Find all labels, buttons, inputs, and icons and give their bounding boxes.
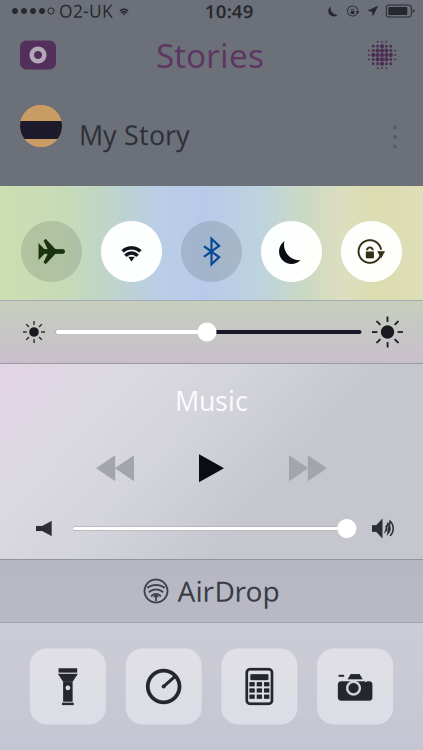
button[interactable]: Wi-Fi xyxy=(91,186,171,300)
button[interactable]: Next Track xyxy=(269,442,347,494)
button[interactable]: Brightness xyxy=(73,518,351,538)
button[interactable]: Timer xyxy=(116,630,212,742)
staticText: O2-UK xyxy=(59,0,113,22)
button[interactable]: Discover People xyxy=(358,33,406,77)
staticText: My Story xyxy=(79,117,190,153)
button[interactable]: Play xyxy=(172,442,250,494)
button[interactable]: Camera xyxy=(307,630,403,742)
button[interactable]: My Story xyxy=(0,88,423,164)
button[interactable]: Bluetooth xyxy=(171,186,251,300)
button[interactable]: Flashlight xyxy=(20,630,116,742)
staticText: Stories xyxy=(156,33,264,77)
button[interactable]: Airplane Mode xyxy=(11,186,91,300)
staticText: AirDrop xyxy=(177,572,279,610)
staticText: Music xyxy=(175,383,248,418)
button[interactable]: Do Not Disturb xyxy=(251,186,331,300)
button[interactable]: Calculator xyxy=(211,630,307,742)
staticText: 10:49 xyxy=(205,0,254,23)
button[interactable]: Rotation Lock xyxy=(331,186,411,300)
button[interactable]: Brightness xyxy=(55,322,361,342)
button[interactable]: AirDrop xyxy=(0,560,423,622)
button[interactable]: Previous Track xyxy=(76,442,154,494)
button[interactable]: Camera xyxy=(14,33,62,77)
